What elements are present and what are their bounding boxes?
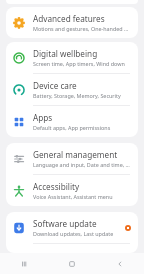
- button[interactable]: Software update: [6, 212, 138, 243]
- staticText: Apps: [33, 112, 53, 123]
- button[interactable]: Digital wellbeing: [6, 42, 138, 73]
- button[interactable]: Advanced features: [6, 7, 138, 38]
- staticText: Digital wellbeing: [33, 48, 98, 59]
- staticText: Battery, Storage, Memory, Security: [33, 92, 121, 99]
- button[interactable]: Back: [96, 253, 144, 274]
- staticText: Default apps, App permissions: [33, 124, 111, 131]
- staticText: Motions and gestures, One-handed mode: [33, 25, 131, 32]
- button[interactable]: Apps: [6, 106, 138, 137]
- staticText: Download updates, Last update: [33, 230, 114, 237]
- staticText: Accessibility: [33, 181, 80, 192]
- staticText: Software update: [33, 218, 97, 229]
- staticText: Voice Assistant, Assistant menu: [33, 193, 113, 200]
- button[interactable]: Device care: [6, 74, 138, 105]
- button[interactable]: Home: [48, 253, 96, 274]
- staticText: Language and input, Date and time, Reset: [33, 161, 131, 168]
- button[interactable]: Accessibility: [6, 175, 138, 206]
- button[interactable]: General management: [6, 143, 138, 174]
- button[interactable]: Recent apps: [0, 253, 48, 274]
- staticText: General management: [33, 149, 118, 160]
- staticText: Device care: [33, 80, 77, 91]
- staticText: Advanced features: [33, 13, 105, 24]
- staticText: Screen time, App timers, Wind down: [33, 60, 125, 67]
